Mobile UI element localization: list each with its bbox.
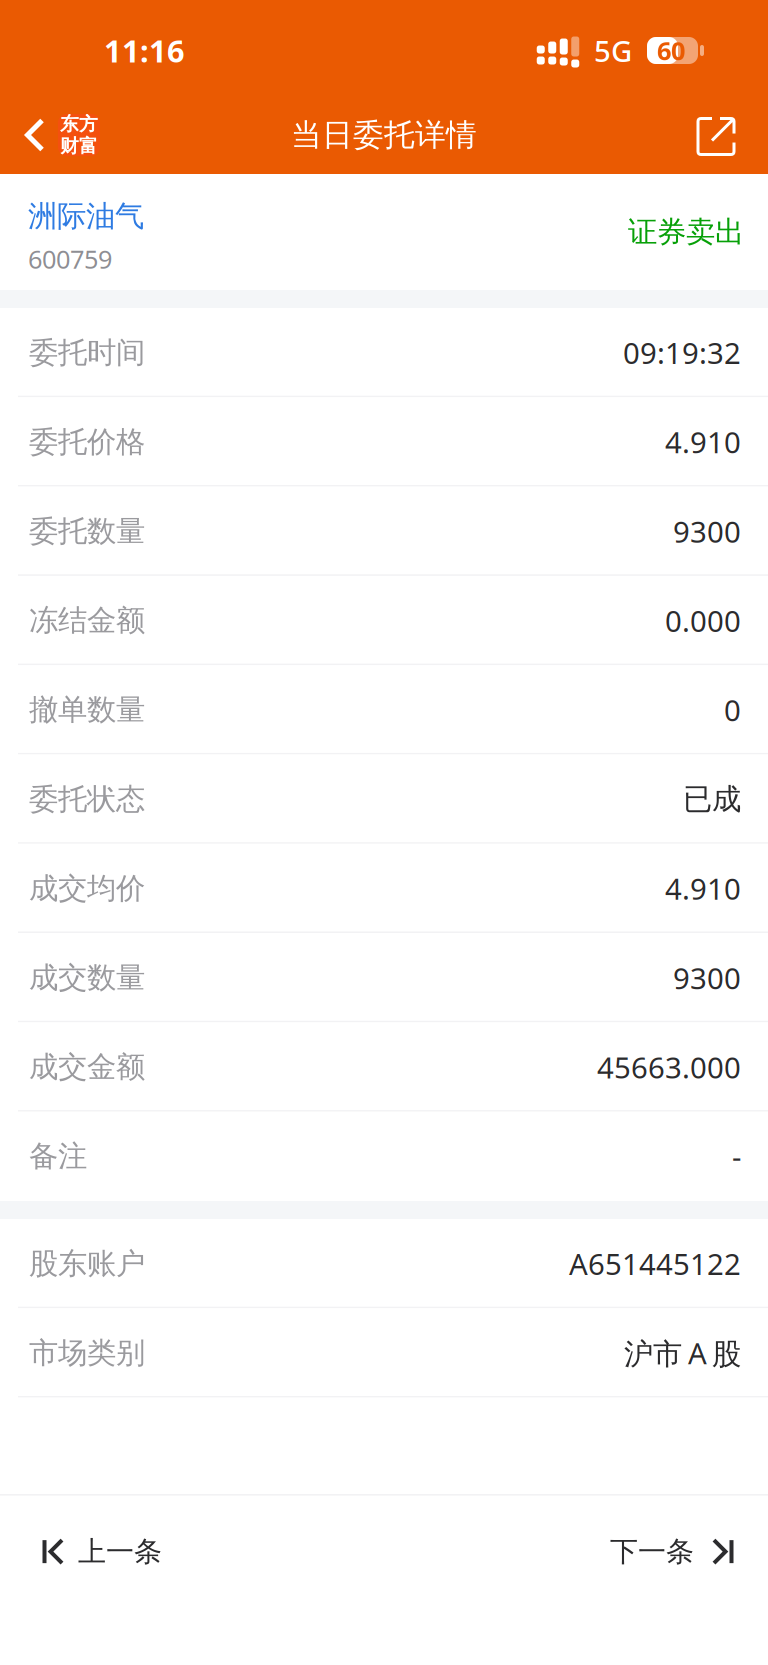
staticText: 成交金额 bbox=[29, 1049, 145, 1085]
staticText: 委托时间 bbox=[29, 335, 145, 371]
staticText: 5G bbox=[594, 31, 632, 70]
staticText: 财富 bbox=[60, 134, 98, 157]
staticText: 4.910 bbox=[665, 869, 741, 908]
button[interactable]: 下一条 bbox=[586, 1496, 768, 1608]
button[interactable]: 洲际油气 bbox=[28, 188, 144, 276]
staticText: 下一条 bbox=[610, 1534, 694, 1569]
button[interactable]: 分享 bbox=[696, 92, 768, 174]
staticText: 0 bbox=[724, 690, 741, 729]
staticText: 委托数量 bbox=[29, 513, 145, 549]
staticText: 沪市 A 股 bbox=[624, 1333, 741, 1372]
staticText: 股东账户 bbox=[29, 1246, 145, 1282]
staticText: 09:19:32 bbox=[623, 333, 741, 372]
staticText: 成交数量 bbox=[29, 960, 145, 996]
staticText: 上一条 bbox=[78, 1534, 162, 1569]
staticText: - bbox=[732, 1137, 741, 1176]
button[interactable]: 上一条 bbox=[0, 1496, 186, 1608]
staticText: 成交均价 bbox=[29, 870, 145, 906]
staticText: 当日委托详情 bbox=[291, 116, 477, 154]
staticText: 东方 bbox=[60, 113, 98, 135]
staticText: 4.910 bbox=[665, 422, 741, 461]
staticText: 撤单数量 bbox=[29, 692, 145, 728]
staticText: 9300 bbox=[673, 958, 741, 997]
staticText: 备注 bbox=[29, 1138, 87, 1174]
staticText: 市场类别 bbox=[29, 1335, 145, 1371]
staticText: 冻结金额 bbox=[29, 602, 145, 638]
staticText: A651445122 bbox=[569, 1244, 741, 1283]
button[interactable]: 返回 东方财富 bbox=[0, 92, 116, 174]
staticText: 45663.000 bbox=[597, 1048, 741, 1087]
staticText: 0.000 bbox=[665, 601, 741, 640]
staticText: 9300 bbox=[673, 512, 741, 551]
staticText: 委托价格 bbox=[29, 424, 145, 460]
staticText: 证券卖出 bbox=[628, 214, 744, 250]
staticText: 11:16 bbox=[104, 30, 185, 71]
staticText: 600759 bbox=[28, 242, 112, 276]
staticText: 60 bbox=[657, 34, 685, 67]
staticText: 委托状态 bbox=[29, 781, 145, 817]
staticText: 洲际油气 bbox=[28, 198, 144, 234]
staticText: 已成 bbox=[683, 781, 741, 817]
